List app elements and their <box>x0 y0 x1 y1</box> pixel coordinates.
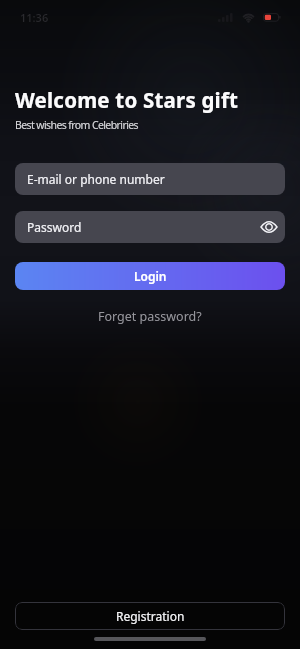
staticText: Registration <box>116 608 185 624</box>
staticText: E-mail or phone number <box>27 171 165 187</box>
staticText: Password <box>27 219 82 235</box>
staticText: Welcome to Stars gift <box>15 86 239 114</box>
button[interactable] <box>260 218 278 236</box>
staticText: 11:36 <box>20 10 49 25</box>
staticText: Best wishes from Celebriries <box>15 118 138 132</box>
button[interactable]: Password <box>15 211 285 243</box>
button[interactable]: Login <box>15 262 285 290</box>
button[interactable]: Registration <box>15 602 285 630</box>
staticText: Forget password? <box>98 308 202 325</box>
button[interactable]: Forget password? <box>98 308 202 325</box>
button[interactable]: E-mail or phone number <box>15 163 285 195</box>
staticText: Login <box>134 268 167 284</box>
